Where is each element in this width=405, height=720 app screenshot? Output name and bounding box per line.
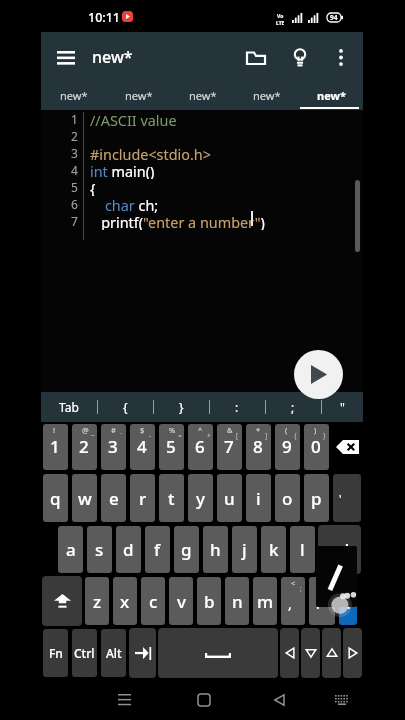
- button[interactable]: Open folder: [235, 36, 277, 78]
- button[interactable]: new*: [41, 81, 106, 110]
- staticText: 4: [71, 162, 78, 178]
- button[interactable]: }: [153, 392, 209, 422]
- button[interactable]: ,: [281, 577, 305, 625]
- button[interactable]: h: [203, 526, 228, 573]
- button[interactable]: 5: [159, 424, 184, 470]
- staticText: 1: [50, 435, 60, 458]
- button[interactable]: f: [145, 526, 170, 573]
- button[interactable]: u: [217, 474, 242, 522]
- button[interactable]: Enter: [318, 525, 361, 574]
- staticText: -: [149, 431, 152, 440]
- button[interactable]: v: [169, 577, 193, 625]
- button[interactable]: Menu: [47, 38, 85, 76]
- button[interactable]: Right: [343, 628, 362, 678]
- button[interactable]: Tab: [129, 628, 156, 678]
- button[interactable]: Shift: [42, 576, 82, 626]
- button[interactable]: b: [197, 577, 221, 625]
- staticText: Ctrl: [74, 645, 95, 661]
- button[interactable]: p: [304, 474, 329, 522]
- staticText: 0: [311, 435, 321, 458]
- button[interactable]: a: [58, 526, 83, 573]
- button[interactable]: Keyboard: [327, 685, 356, 714]
- button[interactable]: 4: [130, 424, 155, 470]
- button[interactable]: new*: [171, 81, 235, 110]
- button[interactable]: y: [188, 474, 213, 522]
- button[interactable]: s: [87, 526, 112, 573]
- button[interactable]: Backspace: [332, 423, 362, 471]
- button[interactable]: ': [333, 474, 361, 522]
- button[interactable]: Alt: [101, 629, 126, 677]
- button[interactable]: Tab: [41, 392, 97, 422]
- staticText: t: [168, 487, 175, 510]
- button[interactable]: new*: [235, 81, 299, 110]
- button[interactable]: m: [253, 577, 277, 625]
- button[interactable]: d: [116, 526, 141, 573]
- button[interactable]: {: [97, 392, 153, 422]
- button[interactable]: new*: [106, 81, 171, 110]
- staticText: 7: [224, 435, 234, 458]
- button[interactable]: 0: [304, 424, 329, 470]
- button[interactable]: x: [113, 577, 137, 625]
- button[interactable]: 2: [72, 424, 97, 470]
- staticText: ,: [288, 594, 292, 613]
- staticText: %: [169, 425, 176, 435]
- button[interactable]: 8: [246, 424, 271, 470]
- button[interactable]: n: [225, 577, 249, 625]
- button[interactable]: 3: [101, 424, 126, 470]
- button[interactable]: g: [174, 526, 199, 573]
- button[interactable]: Home: [189, 685, 218, 714]
- staticText: &: [227, 425, 233, 435]
- staticText: }: [323, 431, 326, 440]
- button[interactable]: i: [246, 474, 271, 522]
- button[interactable]: Left: [280, 628, 299, 678]
- button[interactable]: ?: [339, 577, 357, 625]
- button[interactable]: l: [290, 526, 315, 573]
- staticText: :: [235, 399, 239, 415]
- staticText: ~: [91, 431, 95, 440]
- staticText: 94: [330, 13, 338, 22]
- button[interactable]: Run: [294, 350, 343, 399]
- button[interactable]: Fn: [43, 629, 68, 677]
- button[interactable]: q: [43, 474, 68, 522]
- staticText: a: [66, 538, 76, 561]
- button[interactable]: j: [232, 526, 257, 573]
- staticText: +: [207, 431, 211, 440]
- button[interactable]: k: [261, 526, 286, 573]
- button[interactable]: Hint: [279, 36, 321, 78]
- staticText: m: [257, 590, 274, 613]
- staticText: int main(): [90, 162, 155, 179]
- button[interactable]: e: [101, 474, 126, 522]
- button[interactable]: Ctrl: [72, 629, 97, 677]
- staticText: 2: [71, 128, 78, 144]
- button[interactable]: ": [321, 392, 363, 422]
- button[interactable]: 1: [43, 424, 68, 470]
- staticText: printf("enter a number"): [90, 213, 265, 230]
- button[interactable]: Up: [322, 628, 341, 678]
- button[interactable]: :: [209, 392, 265, 422]
- staticText: ^: [198, 425, 203, 435]
- button[interactable]: t: [159, 474, 184, 522]
- button[interactable]: ;: [265, 392, 321, 422]
- staticText: d: [123, 538, 134, 561]
- button[interactable]: o: [275, 474, 300, 522]
- button[interactable]: 6: [188, 424, 213, 470]
- button[interactable]: r: [130, 474, 155, 522]
- button[interactable]: c: [141, 577, 165, 625]
- button[interactable]: More options: [323, 39, 359, 75]
- staticText: 6: [195, 435, 205, 458]
- staticText: 9: [282, 435, 292, 458]
- button[interactable]: Space: [158, 628, 278, 678]
- staticText: 10:11: [88, 9, 121, 26]
- button[interactable]: 9: [275, 424, 300, 470]
- button[interactable]: Down: [301, 628, 320, 678]
- button[interactable]: w: [72, 474, 97, 522]
- button[interactable]: Back: [264, 685, 293, 714]
- staticText: k: [269, 538, 279, 561]
- button[interactable]: new*: [299, 81, 363, 110]
- button[interactable]: z: [85, 577, 109, 625]
- button[interactable]: .: [309, 577, 335, 625]
- button[interactable]: 7: [217, 424, 242, 470]
- button[interactable]: Recents: [110, 685, 139, 714]
